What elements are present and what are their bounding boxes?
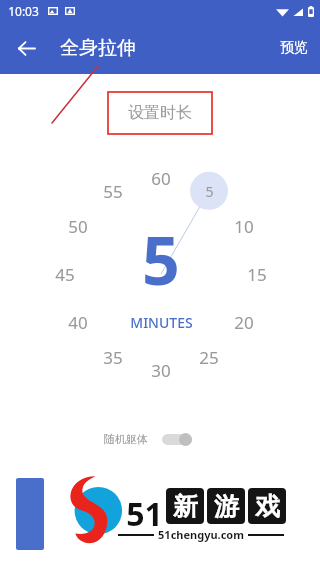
staticText: 55 bbox=[103, 180, 123, 203]
staticText: MINUTES bbox=[130, 313, 193, 332]
button[interactable]: 5 bbox=[190, 178, 228, 204]
button[interactable]: 55 bbox=[94, 178, 132, 204]
staticText: 戏 bbox=[255, 491, 280, 522]
button[interactable]: 预览 bbox=[268, 27, 320, 69]
button[interactable]: 30 bbox=[142, 357, 180, 383]
button[interactable]: 45 bbox=[46, 261, 84, 287]
staticText: 5 bbox=[205, 182, 214, 201]
staticText: 随机躯体 bbox=[104, 432, 148, 446]
button[interactable]: 40 bbox=[59, 309, 97, 335]
staticText: 全身拉伸 bbox=[60, 36, 136, 60]
staticText: 45 bbox=[55, 263, 75, 286]
staticText: 20 bbox=[234, 311, 254, 334]
staticText: 10 bbox=[234, 215, 254, 238]
staticText: 设置时长 bbox=[128, 103, 192, 123]
button[interactable]: 25 bbox=[190, 344, 228, 370]
staticText: 10:03 bbox=[8, 3, 39, 19]
staticText: 51 bbox=[126, 492, 163, 536]
button[interactable]: 35 bbox=[94, 344, 132, 370]
button[interactable]: 10 bbox=[225, 213, 263, 239]
staticText: 新 bbox=[173, 491, 198, 522]
button[interactable]: 60 bbox=[142, 165, 180, 191]
staticText: 游 bbox=[214, 491, 239, 522]
staticText: 51chengyu.com bbox=[158, 527, 244, 542]
staticText: 30 bbox=[151, 359, 171, 382]
button[interactable]: Back bbox=[6, 28, 46, 68]
staticText: 15 bbox=[247, 263, 267, 286]
staticText: 35 bbox=[103, 346, 123, 369]
button[interactable]: 20 bbox=[225, 309, 263, 335]
staticText: 25 bbox=[199, 346, 219, 369]
staticText: 50 bbox=[68, 215, 88, 238]
staticText: 预览 bbox=[280, 39, 308, 57]
button[interactable]: 50 bbox=[59, 213, 97, 239]
staticText: 60 bbox=[151, 167, 171, 190]
button[interactable]: 随机躯体 bbox=[104, 432, 192, 446]
button[interactable]: 15 bbox=[238, 261, 276, 287]
staticText: 5 bbox=[142, 214, 180, 304]
staticText: 40 bbox=[68, 311, 88, 334]
